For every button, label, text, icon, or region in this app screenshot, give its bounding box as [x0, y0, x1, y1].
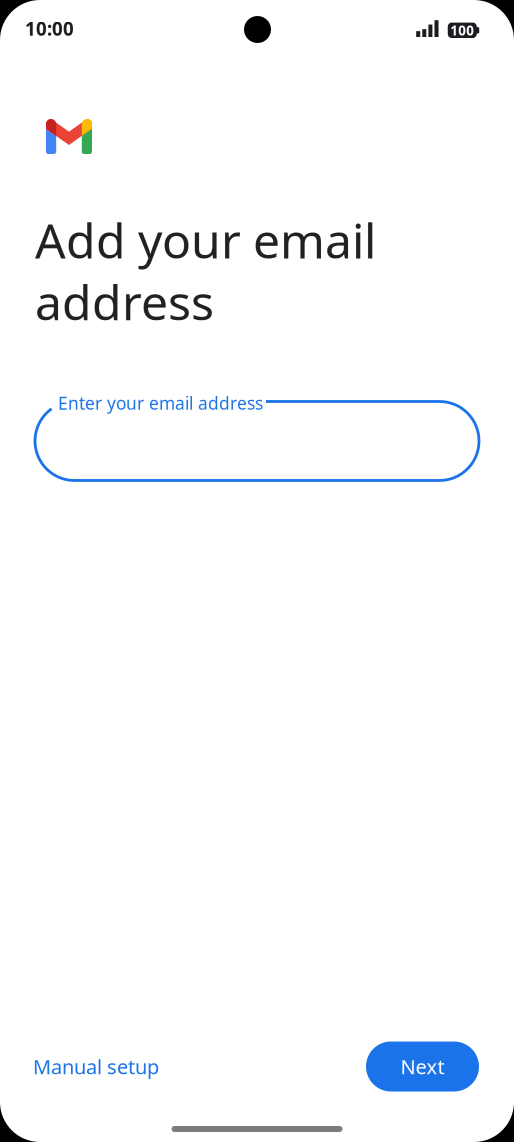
button[interactable]: Manual setup: [33, 1042, 167, 1091]
staticText: Add your email: [35, 208, 376, 272]
staticText: 100: [450, 21, 474, 39]
staticText: address: [35, 270, 214, 333]
staticText: Enter your email address: [58, 391, 263, 414]
staticText: 10:00: [25, 16, 74, 41]
staticText: Manual setup: [33, 1053, 159, 1080]
button[interactable]: Enter your email address: [35, 391, 479, 480]
staticText: Next: [400, 1053, 444, 1080]
button[interactable]: Next: [366, 1041, 479, 1091]
